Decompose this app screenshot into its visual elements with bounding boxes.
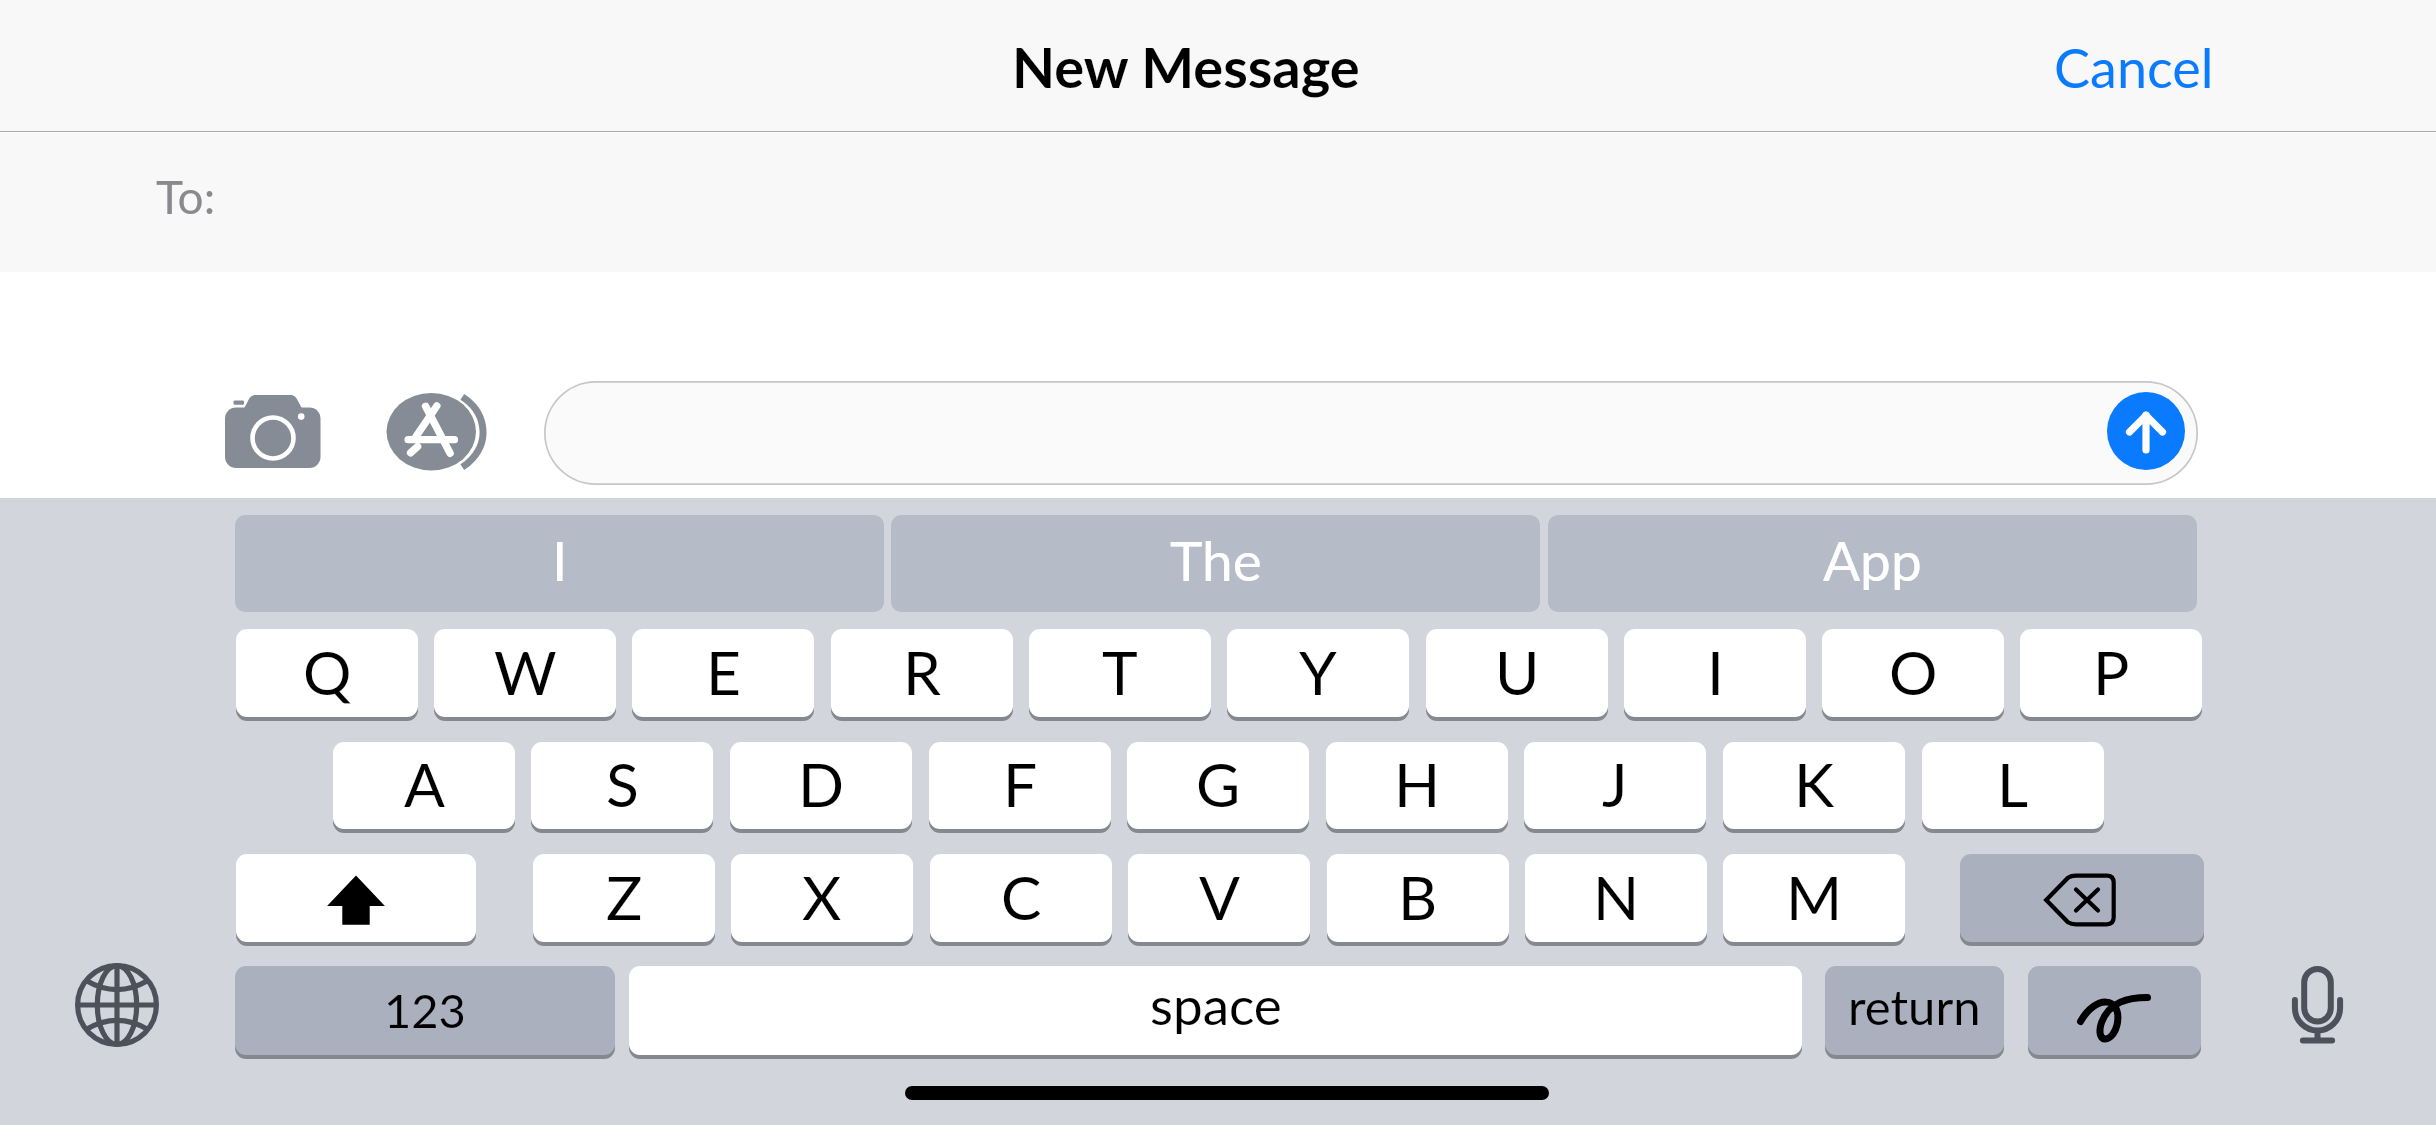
button[interactable]: I — [1624, 629, 1806, 717]
button[interactable]: D — [730, 742, 912, 829]
staticText: W — [494, 635, 557, 708]
staticText: space — [1150, 973, 1282, 1037]
staticText: B — [1398, 860, 1438, 933]
staticText: To: — [156, 169, 216, 224]
button[interactable]: F — [929, 742, 1111, 829]
button[interactable]: App Store — [383, 388, 485, 476]
button[interactable]: A — [333, 742, 515, 829]
button[interactable]: T — [1029, 629, 1211, 717]
staticText: The — [1170, 527, 1262, 593]
button[interactable]: W — [434, 629, 616, 717]
staticText: X — [802, 860, 842, 933]
staticText: Cancel — [2054, 35, 2214, 100]
staticText: F — [1003, 747, 1038, 820]
staticText: Y — [1299, 635, 1337, 708]
staticText: Z — [606, 860, 643, 933]
button[interactable]: The — [891, 515, 1540, 612]
button[interactable]: V — [1128, 854, 1310, 942]
button[interactable] — [544, 381, 2198, 485]
button[interactable]: N — [1525, 854, 1707, 942]
button[interactable]: Take photo — [220, 388, 330, 475]
button[interactable]: App — [1548, 515, 2197, 612]
button[interactable]: Dictate — [2292, 966, 2344, 1046]
button[interactable]: P — [2020, 629, 2202, 717]
staticText: I — [1707, 635, 1724, 708]
staticText: K — [1794, 747, 1835, 820]
staticText: N — [1593, 860, 1640, 933]
button[interactable]: O — [1822, 629, 2004, 717]
staticText: R — [903, 635, 941, 708]
staticText: G — [1196, 747, 1241, 820]
staticText: S — [606, 747, 639, 820]
staticText: M — [1786, 860, 1843, 933]
button[interactable]: E — [632, 629, 814, 717]
button[interactable]: I — [235, 515, 884, 612]
staticText: J — [1602, 747, 1628, 820]
button[interactable]: M — [1723, 854, 1905, 942]
staticText: return — [1848, 977, 1981, 1036]
button[interactable]: K — [1723, 742, 1905, 829]
button[interactable]: Delete — [1960, 854, 2204, 942]
staticText: D — [798, 747, 845, 820]
button[interactable]: Y — [1227, 629, 1409, 717]
button[interactable]: Send — [2107, 392, 2185, 470]
staticText: O — [1889, 635, 1938, 708]
staticText: E — [706, 635, 741, 708]
button[interactable]: Shift — [236, 854, 476, 942]
staticText: H — [1394, 747, 1441, 820]
staticText: T — [1102, 635, 1138, 708]
button[interactable]: 123 — [235, 966, 615, 1055]
button[interactable]: J — [1524, 742, 1706, 829]
staticText: App — [1823, 527, 1922, 593]
staticText: A — [404, 747, 445, 820]
staticText: 123 — [384, 982, 466, 1038]
button[interactable]: Z — [533, 854, 715, 942]
staticText: V — [1199, 860, 1240, 933]
staticText: U — [1495, 635, 1540, 708]
button[interactable]: G — [1127, 742, 1309, 829]
button[interactable]: S — [531, 742, 713, 829]
button[interactable]: return — [1825, 966, 2004, 1055]
staticText: I — [552, 527, 568, 593]
staticText: New Message — [1012, 33, 1360, 100]
button[interactable]: R — [831, 629, 1013, 717]
button[interactable]: B — [1327, 854, 1509, 942]
staticText: Q — [303, 635, 352, 708]
button[interactable]: Q — [236, 629, 418, 717]
button[interactable]: X — [731, 854, 913, 942]
staticText: L — [1997, 747, 2029, 820]
button[interactable]: space — [629, 966, 1802, 1055]
staticText: C — [1001, 860, 1042, 933]
staticText: P — [2093, 635, 2130, 708]
button[interactable]: Change keyboard — [75, 963, 159, 1047]
button[interactable]: C — [930, 854, 1112, 942]
button[interactable]: Handwriting — [2028, 966, 2201, 1055]
button[interactable]: To: — [0, 133, 2436, 272]
button[interactable]: H — [1326, 742, 1508, 829]
button[interactable]: Cancel — [2014, 0, 2254, 132]
button[interactable]: U — [1426, 629, 1608, 717]
button[interactable]: L — [1922, 742, 2104, 829]
